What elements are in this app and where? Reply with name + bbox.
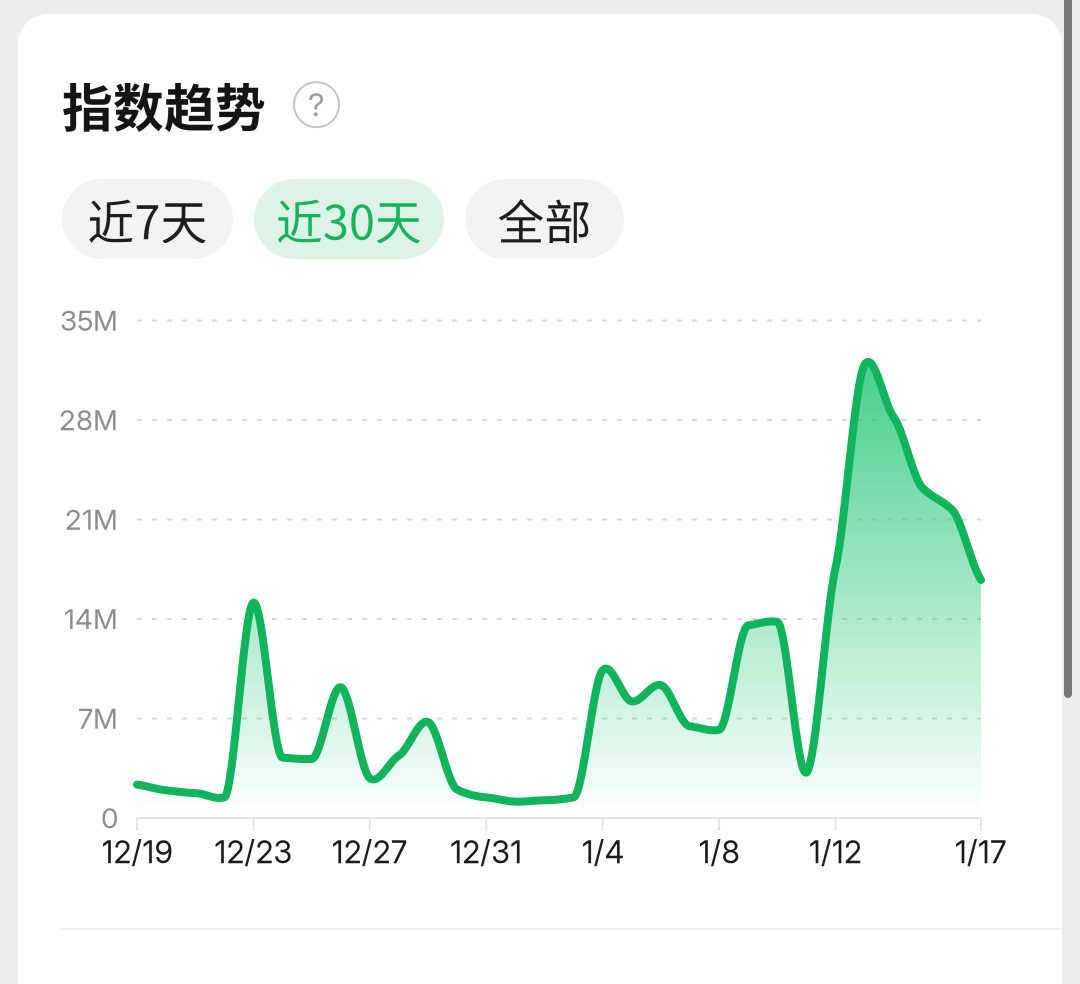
button[interactable]: 全部 [465,179,624,259]
staticText: 0 [101,801,118,835]
staticText: 28M [59,403,118,437]
staticText: 近30天 [276,185,422,253]
button[interactable]: Help [294,82,339,127]
staticText: 35M [60,304,118,337]
staticText: 全部 [497,185,591,253]
staticText: 21M [65,503,118,536]
button[interactable]: 近30天 [254,179,444,259]
staticText: 指数趋势 [62,68,266,141]
button[interactable]: 近7天 [62,179,233,259]
staticText: 12/23 [214,833,292,870]
staticText: 12/27 [332,833,408,870]
staticText: 14M [64,602,118,636]
staticText: ? [308,85,325,124]
staticText: 1/4 [582,833,624,870]
staticText: 12/31 [450,833,522,870]
staticText: 12/19 [101,833,172,870]
staticText: 近7天 [87,185,207,253]
staticText: 7M [78,702,118,735]
staticText: 1/8 [699,833,740,870]
staticText: 1/17 [955,833,1007,870]
staticText: 1/12 [809,833,862,870]
